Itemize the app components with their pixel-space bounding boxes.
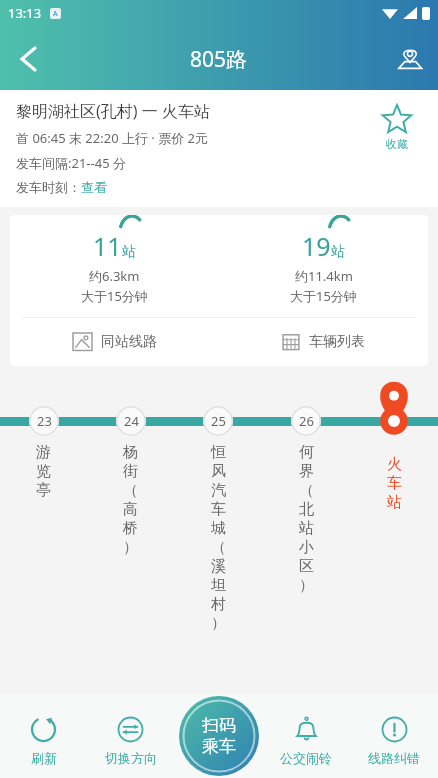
staticText: 桥 <box>123 519 138 538</box>
staticText: 车辆列表 <box>309 333 365 351</box>
staticText: 城 <box>211 519 226 538</box>
staticText: 览 <box>36 462 51 481</box>
staticText: 区 <box>299 557 314 576</box>
staticText: 线路纠错 <box>368 750 420 766</box>
staticText: （ <box>299 481 314 500</box>
staticText: 恒 <box>211 443 226 462</box>
button[interactable]: 公交闹铃 <box>262 694 350 778</box>
staticText: 首 06:45 末 22:20 上行 · 票价 2元 <box>16 129 209 147</box>
staticText: 大于15分钟 <box>290 287 357 305</box>
button[interactable]: 火 <box>350 380 438 512</box>
staticText: 乘车 <box>202 736 236 757</box>
staticText: 站 <box>331 243 345 261</box>
staticText: 车 <box>387 474 402 493</box>
staticText: （ <box>123 481 138 500</box>
button[interactable]: 26 <box>262 380 350 595</box>
staticText: 发车时刻： <box>16 179 81 195</box>
staticText: ） <box>299 576 314 595</box>
staticText: 何 <box>299 443 314 462</box>
staticText: 黎明湖社区(孔村) 一 火车站 <box>16 100 210 122</box>
staticText: 站 <box>122 243 136 261</box>
staticText: 发车间隔:21--45 分 <box>16 154 126 172</box>
staticText: ） <box>123 538 138 557</box>
staticText: 公交闹铃 <box>280 750 332 766</box>
staticText: 23 <box>37 412 52 430</box>
staticText: 风 <box>211 462 226 481</box>
button[interactable]: 11 <box>10 229 219 305</box>
staticText: 亭 <box>36 481 51 500</box>
staticText: 村 <box>211 595 226 614</box>
staticText: 19 <box>302 229 331 263</box>
staticText: 街 <box>123 462 138 481</box>
staticText: 约6.3km <box>89 267 140 285</box>
staticText: 切换方向 <box>105 750 157 766</box>
staticText: 805路 <box>190 45 248 74</box>
button[interactable]: 收藏 <box>382 104 412 151</box>
button[interactable]: 19 <box>219 229 428 305</box>
button[interactable]: 查看 <box>81 179 107 195</box>
staticText: 25 <box>211 412 226 430</box>
staticText: 24 <box>124 412 139 430</box>
button[interactable]: 23 <box>0 380 87 500</box>
staticText: ） <box>211 614 226 630</box>
button[interactable]: 刷新 <box>0 694 87 778</box>
button[interactable]: 同站线路 <box>10 318 219 366</box>
staticText: 高 <box>123 500 138 519</box>
staticText: 站 <box>299 519 314 538</box>
button[interactable]: 24 <box>87 380 174 557</box>
staticText: 26 <box>299 412 314 430</box>
button[interactable]: 扫码 <box>179 696 259 776</box>
staticText: 界 <box>299 462 314 481</box>
button[interactable]: 25 <box>174 380 262 630</box>
staticText: 同站线路 <box>101 333 157 351</box>
staticText: 站 <box>387 493 402 512</box>
staticText: 刷新 <box>31 750 57 766</box>
staticText: 溪 <box>211 557 226 576</box>
button[interactable]: Map <box>382 31 438 87</box>
staticText: 游 <box>36 443 51 462</box>
staticText: 收藏 <box>386 137 408 151</box>
button[interactable]: Back <box>0 31 56 87</box>
staticText: 查看 <box>81 179 107 195</box>
staticText: 11 <box>93 229 122 263</box>
staticText: 约11.4km <box>295 267 353 285</box>
staticText: 火 <box>387 455 402 474</box>
staticText: 车 <box>211 500 226 519</box>
staticText: A <box>53 9 58 19</box>
staticText: 大于15分钟 <box>81 287 148 305</box>
staticText: 13:13 <box>8 4 42 22</box>
staticText: 扫码 <box>202 715 236 736</box>
staticText: 小 <box>299 538 314 557</box>
button[interactable]: 线路纠错 <box>350 694 438 778</box>
staticText: 杨 <box>123 443 138 462</box>
staticText: 汽 <box>211 481 226 500</box>
button[interactable]: 车辆列表 <box>219 318 428 366</box>
staticText: 北 <box>299 500 314 519</box>
staticText: 坦 <box>211 576 226 595</box>
staticText: （ <box>211 538 226 557</box>
button[interactable]: 切换方向 <box>87 694 174 778</box>
